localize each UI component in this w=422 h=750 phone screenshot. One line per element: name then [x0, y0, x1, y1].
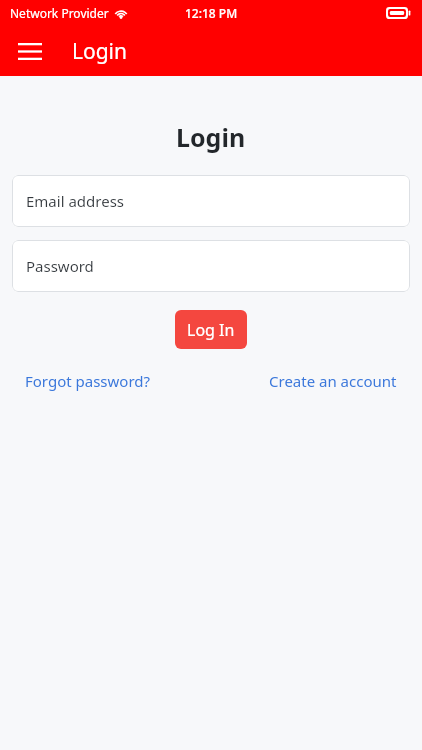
button[interactable]: Email address: [12, 175, 410, 227]
button[interactable]: Open navigation menu: [8, 29, 52, 73]
staticText: Network Provider: [10, 5, 109, 21]
button[interactable]: Password: [12, 240, 410, 292]
button[interactable]: Create an account: [269, 371, 397, 391]
staticText: Login: [176, 120, 246, 154]
staticText: Email address: [26, 191, 125, 211]
button[interactable]: Log In: [175, 310, 247, 349]
staticText: 12:18 PM: [185, 5, 238, 21]
staticText: Forgot password?: [25, 371, 151, 391]
staticText: Log In: [187, 319, 235, 341]
staticText: Password: [26, 256, 94, 276]
button[interactable]: Forgot password?: [25, 371, 151, 391]
staticText: Create an account: [269, 371, 397, 391]
staticText: Login: [72, 37, 128, 66]
